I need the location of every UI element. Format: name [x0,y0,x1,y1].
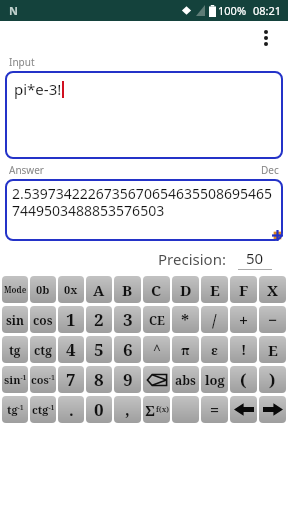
button[interactable] [172,396,199,423]
button[interactable]: B [114,276,141,303]
staticText: CE [149,312,165,328]
staticText: tg-1 [7,402,24,417]
staticText: − [268,309,278,331]
staticText: abs [175,372,196,388]
staticText: 3 [123,308,133,331]
button[interactable]: , [114,396,141,423]
button[interactable]: ctg-1 [30,396,56,423]
staticText: ( [240,369,247,391]
staticText: ^ [153,340,161,359]
button[interactable]: 5 [86,336,112,363]
button[interactable]: 8 [86,366,112,393]
button[interactable]: F [230,276,257,303]
button[interactable]: 7 [58,366,84,393]
staticText: E [268,340,278,360]
button[interactable]: pi*e-3! [5,71,283,159]
staticText: log [205,371,225,389]
button[interactable]: 4 [58,336,84,363]
button[interactable]: More options [250,22,282,54]
staticText: sin-1 [4,372,27,387]
button[interactable]: Right [259,396,286,423]
button[interactable]: A [86,276,112,303]
staticText: C [151,280,162,300]
button[interactable]: 2 [86,306,112,333]
button[interactable]: cos-1 [30,366,56,393]
staticText: E [210,280,220,300]
button[interactable]: X [259,276,286,303]
button[interactable]: ! [230,336,257,363]
staticText: ) [269,369,276,391]
button[interactable]: / [201,306,228,333]
button[interactable]: ctg [30,336,56,363]
button[interactable]: ε [201,336,228,363]
button[interactable]: cos [30,306,56,333]
staticText: 2 [94,308,104,331]
button[interactable]: * [172,306,199,333]
staticText: Input [9,55,35,69]
staticText: 4 [66,338,76,361]
button[interactable]: abs [172,366,199,393]
button[interactable]: π [172,336,199,363]
staticText: pi*e-3! [14,79,62,99]
button[interactable]: sin-1 [2,366,28,393]
staticText: Answer [9,163,44,177]
button[interactable]: Mode [2,276,28,303]
staticText: F [239,280,249,300]
button[interactable]: 1 [58,306,84,333]
button[interactable]: Sum function [143,396,170,423]
button[interactable]: E [201,276,228,303]
staticText: 7 [66,368,76,391]
staticText: ε [211,341,218,359]
button[interactable]: 0b [30,276,56,303]
staticText: * [181,309,190,331]
staticText: 9 [123,368,133,391]
staticText: Dec [261,163,279,177]
button[interactable]: + [230,306,257,333]
staticText: X [267,280,278,300]
button[interactable]: 0 [86,396,112,423]
button[interactable]: 2.53973422267356706546355086954657449503… [5,179,283,241]
button[interactable]: E [259,336,286,363]
staticText: 2.53973422267356706546355086954657449503… [12,184,277,220]
staticText: Precision: [158,249,226,269]
button[interactable]: . [58,396,84,423]
staticText: / [212,309,217,331]
staticText: A [93,280,105,300]
button[interactable]: = [201,396,228,423]
button[interactable]: log [201,366,228,393]
button[interactable]: ( [230,366,257,393]
staticText: N [9,3,18,18]
staticText: B [122,280,133,300]
staticText: ctg-1 [32,402,55,417]
staticText: π [181,341,190,359]
staticText: 6 [123,338,133,361]
staticText: ! [241,340,247,359]
staticText: 1 [66,308,76,331]
button[interactable]: D [172,276,199,303]
button[interactable]: tg-1 [2,396,28,423]
staticText: tg [9,342,21,358]
button[interactable]: ^ [143,336,170,363]
button[interactable]: CE [143,306,170,333]
button[interactable]: tg [2,336,28,363]
button[interactable]: 9 [114,366,141,393]
button[interactable]: Left [230,396,257,423]
staticText: sin [6,312,25,328]
button[interactable]: − [259,306,286,333]
button[interactable]: 0x [58,276,84,303]
staticText: 50 [246,248,264,268]
button[interactable]: sin [2,306,28,333]
button[interactable]: ) [259,366,286,393]
staticText: Mode [4,284,27,295]
staticText: 0x [64,282,78,297]
button[interactable]: 50 [238,248,272,270]
staticText: 0 [94,398,104,421]
button[interactable]: 6 [114,336,141,363]
button[interactable]: C [143,276,170,303]
button[interactable]: 3 [114,306,141,333]
staticText: , [125,399,130,421]
staticText: cos [33,312,53,328]
button[interactable]: Backspace [143,366,170,393]
staticText: 8 [94,368,104,391]
staticText: D [180,280,192,300]
